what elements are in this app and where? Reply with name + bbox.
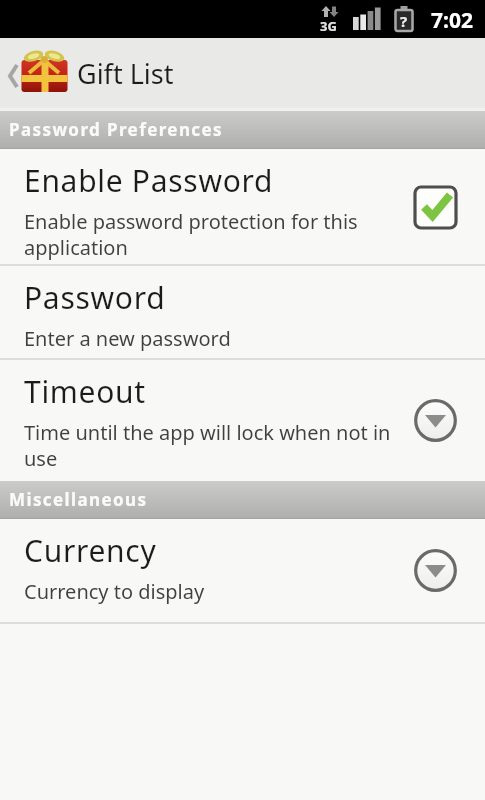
staticText: Currency [24,530,157,571]
staticText: Currency to display [24,578,205,605]
staticText: Enable Password [24,160,274,201]
staticText: Gift List [77,55,174,92]
staticText: Enable password protection for this appl… [24,208,358,260]
staticText: Miscellaneous [9,488,148,511]
staticText: Time until the app will lock when not in… [24,419,391,471]
staticText: Password Preferences [9,118,224,141]
staticText: ? [400,11,408,31]
button[interactable]: Timeout [0,360,485,481]
button[interactable]: Currency [0,519,485,622]
staticText: 3G [320,17,337,35]
staticText: Timeout [24,371,146,412]
button[interactable]: Enable Password [0,149,485,264]
staticText: Enter a new password [24,325,231,352]
staticText: 7:02 [431,6,473,35]
button[interactable]: Gift List [0,38,485,108]
button[interactable]: Password [0,266,485,358]
staticText: Password [24,277,166,318]
